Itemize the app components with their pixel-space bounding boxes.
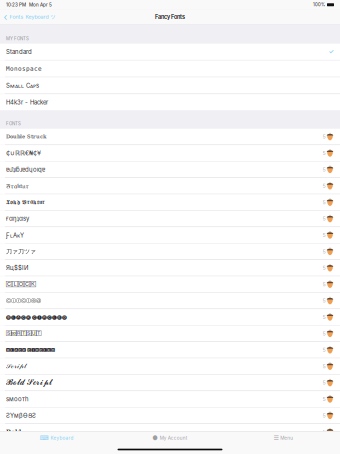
button[interactable]: 🅂🅌🅁🅃🅂🅄🅃 — [0, 325, 340, 341]
staticText: ₵∪ℝℝ€₦₵¥ — [6, 149, 41, 157]
staticText: ғαŋʇαѕу — [6, 215, 29, 222]
button[interactable]: Sᴍᴀʟʟ Cᴀᴘs — [0, 77, 340, 94]
staticText: 𝒮𝒸𝓇𝒾𝓅𝓉 — [6, 363, 26, 370]
staticText: 5 — [322, 347, 325, 353]
staticText: ƧҮмβӨՑƧ — [6, 412, 36, 419]
button[interactable]: 刀ァ刀ツァ — [0, 243, 340, 259]
staticText: Menu — [280, 435, 293, 441]
button[interactable]: H4k3r - Hacker — [0, 94, 340, 111]
button[interactable]: ɐմʇıƃɹɐdɥoıqɐ — [0, 161, 340, 177]
button[interactable]: Standard — [0, 44, 340, 60]
staticText: 5 — [322, 396, 325, 402]
staticText: MY FONTS — [6, 36, 29, 41]
button[interactable]: 🅱🅻🅰🅲🅺 🅲🅸🆁🅲🅻🅴🅳 — [0, 342, 340, 358]
button[interactable]: ☰ — [227, 431, 340, 445]
staticText: Standard — [6, 48, 32, 55]
button[interactable]: 𝒮𝒸𝓇𝒾𝓅𝓉 — [0, 358, 340, 374]
button[interactable]: 𝙼𝚘𝚗𝚘𝚜𝚙𝚊𝚌𝚎 — [0, 60, 340, 77]
staticText: ● — [152, 434, 158, 442]
staticText: My Account — [160, 435, 188, 441]
staticText: Mon Apr 5 — [26, 2, 52, 7]
staticText: 5 — [322, 281, 325, 287]
staticText: 𝓑𝓸𝓵𝓭 𝓢𝓬𝓻𝓲𝓹𝓽 — [6, 379, 52, 387]
staticText: ✓ — [328, 48, 333, 55]
staticText: 𝔻𝕠𝕦𝕓𝕝𝕖 𝕊𝕥𝕣𝕦𝕔𝕜 — [6, 134, 46, 139]
button[interactable]: 𝔻𝕠𝕦𝕓𝕝𝕖 𝕊𝕥𝕣𝕦𝕔𝕜 — [0, 129, 340, 145]
staticText: 𝙼𝚘𝚗𝚘𝚜𝚙𝚊𝚌𝚎 — [6, 65, 42, 72]
staticText: Fonts Keyboard ツ — [7, 14, 55, 20]
staticText: 刀ァ刀ツァ — [6, 248, 36, 255]
staticText: Яц$$ІИ — [6, 264, 29, 271]
button[interactable]: 𝔉𝔯𝔞𝔨𝔱𝔲𝔯 — [0, 178, 340, 194]
staticText: 100% — [313, 2, 325, 7]
staticText: 5 — [322, 150, 325, 156]
staticText: 5 — [322, 429, 325, 435]
staticText: 5 — [322, 232, 325, 238]
staticText: 🄲🄻🄾🄲🄺 — [6, 282, 36, 287]
staticText: 5 — [322, 330, 325, 337]
button[interactable]: 𝓑𝓸𝓵𝓭 𝓢𝓬𝓻𝓲𝓹𝓽 — [0, 375, 340, 391]
staticText: ɐմʇıƃɹɐdɥoıqɐ — [6, 166, 45, 173]
staticText: 10:23 PM — [6, 2, 26, 7]
staticText: Keyboard — [50, 435, 73, 441]
button[interactable]: ● — [113, 431, 227, 445]
staticText: ⌨ — [40, 434, 49, 441]
staticText: 𝔉𝔯𝔞𝔨𝔱𝔲𝔯 — [6, 182, 29, 189]
staticText: FONTS — [6, 121, 21, 126]
staticText: ƑʟАᴋҮ — [6, 231, 24, 239]
staticText: 5 — [322, 183, 325, 189]
button[interactable]: 🄲🄻🄾🄲🄺 — [0, 276, 340, 292]
staticText: 5 — [322, 314, 325, 320]
staticText: 5 — [322, 379, 325, 386]
staticText: 5 — [322, 265, 325, 271]
button[interactable]: Ⓒⓘⓡⓒⓛⓔⓓ — [0, 293, 340, 309]
staticText: 5 — [322, 248, 325, 255]
staticText: 5 — [322, 297, 325, 304]
staticText: Sᴍᴀʟʟ Cᴀᴘs — [6, 81, 39, 90]
staticText: Fancy Fonts — [155, 14, 185, 20]
button[interactable]: ⌨ — [0, 431, 113, 445]
staticText: 5 — [322, 199, 325, 205]
staticText: 🅑🅛🅐🅒🅚 🅒🅘🅡🅒🅛🅔🅓 — [6, 315, 67, 319]
staticText: H4k3r - Hacker — [6, 99, 48, 106]
staticText: 𝖃𝖔𝖐𝖉 𝖁𝖗𝖆𝖐𝖙𝖚𝖗 — [6, 199, 45, 205]
staticText: 5 — [322, 363, 325, 369]
staticText: 🅂🅌🅁🅃🅂🅄🅃 — [6, 331, 41, 336]
button[interactable]: 𝐁𝐨𝐥𝐝 — [0, 424, 340, 440]
staticText: ☰ — [273, 434, 278, 441]
staticText: 🅱🅻🅰🅲🅺 🅲🅸🆁🅲🅻🅴🅳 — [6, 347, 55, 352]
button[interactable]: ѕмоотһ — [0, 391, 340, 407]
button[interactable]: Яц$$ІИ — [0, 260, 340, 276]
staticText: ѕмоотһ — [6, 395, 29, 403]
staticText: 5 — [322, 412, 325, 419]
staticText: ‹ — [3, 11, 7, 23]
button[interactable]: 𝖃𝖔𝖐𝖉 𝖁𝖗𝖆𝖐𝖙𝖚𝖗 — [0, 194, 340, 210]
button[interactable]: ƑʟАᴋҮ — [0, 227, 340, 243]
staticText: 5 — [322, 166, 325, 173]
staticText: Ⓒⓘⓡⓒⓛⓔⓓ — [6, 297, 41, 304]
staticText: 5 — [322, 133, 325, 140]
button[interactable]: 🅑🅛🅐🅒🅚 🅒🅘🅡🅒🅛🅔🅓 — [0, 309, 340, 325]
button[interactable]: ғαŋʇαѕу — [0, 211, 340, 227]
button[interactable]: ‹ — [0, 9, 59, 24]
button[interactable]: ƧҮмβӨՑƧ — [0, 407, 340, 423]
button[interactable]: ₵∪ℝℝ€₦₵¥ — [0, 145, 340, 161]
staticText: 𝐁𝐨𝐥𝐝 — [6, 428, 21, 435]
staticText: 5 — [322, 215, 325, 222]
